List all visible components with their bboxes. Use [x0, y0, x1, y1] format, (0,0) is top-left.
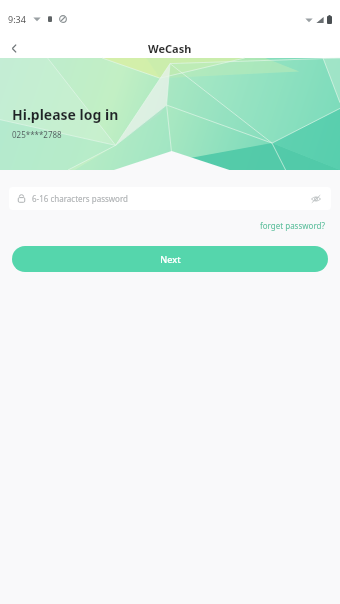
- staticText: forget password?: [260, 220, 325, 231]
- button[interactable]: Back: [0, 38, 28, 58]
- staticText: Hi.please log in: [12, 105, 119, 124]
- staticText: WeCash: [148, 41, 192, 56]
- staticText: 6-16 characters password: [32, 193, 129, 204]
- button[interactable]: 6-16 characters password: [9, 187, 331, 210]
- button[interactable]: forget password?: [258, 219, 327, 232]
- staticText: 025****2788: [12, 129, 62, 140]
- button[interactable]: Show password: [309, 192, 323, 206]
- button[interactable]: Next: [12, 246, 328, 272]
- staticText: 9:34: [8, 13, 26, 25]
- staticText: Next: [160, 253, 181, 265]
